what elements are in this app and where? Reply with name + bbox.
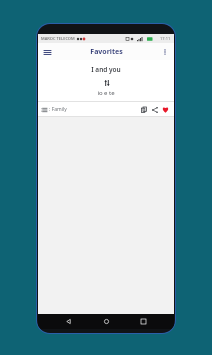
staticText: : Family [49, 106, 67, 113]
staticText: 17:11 [160, 36, 171, 41]
button[interactable]: Swap languages [101, 77, 112, 88]
button[interactable]: Open navigation menu [41, 46, 53, 58]
button[interactable]: : Family [41, 104, 67, 115]
button[interactable]: Favorite [160, 104, 171, 115]
staticText: MAROC TELECOM [41, 36, 75, 41]
staticText: Favorites [90, 47, 123, 57]
button[interactable]: Share [149, 104, 160, 115]
button[interactable]: More options [159, 46, 171, 58]
button[interactable]: Recent apps [136, 314, 151, 329]
button[interactable]: I and you [38, 60, 174, 117]
staticText: I and you [38, 65, 174, 74]
button[interactable]: Back [61, 314, 76, 329]
button[interactable]: Home [99, 314, 114, 329]
button[interactable]: Copy [138, 104, 149, 115]
staticText: io e te [38, 89, 174, 97]
